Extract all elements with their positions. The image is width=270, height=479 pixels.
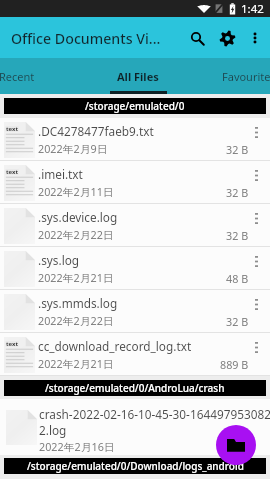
- staticText: .imei.txt: [38, 166, 83, 182]
- button[interactable]: All Files: [80, 58, 196, 94]
- button[interactable]: text: [0, 161, 270, 204]
- staticText: 889 B: [220, 357, 249, 372]
- button[interactable]: text: [0, 333, 270, 376]
- staticText: .sys.device.log: [38, 209, 118, 225]
- staticText: /storage/emulated/0/Download/logs_androi…: [27, 459, 244, 473]
- staticText: crash-2022-02-16-10-45-30-1644979530822.…: [39, 406, 270, 438]
- button[interactable]: /storage/emulated/0/Download/logs_androi…: [4, 458, 266, 474]
- staticText: Office Documents Vi...: [11, 29, 161, 48]
- button[interactable]: crash-2022-02-16-10-45-30-1644979530822.…: [0, 399, 270, 455]
- staticText: .DC4278477faeb9.txt: [38, 123, 154, 139]
- staticText: 2022年2月21日: [38, 270, 114, 285]
- button[interactable]: text: [0, 118, 270, 161]
- staticText: 2022年2月16日: [39, 439, 115, 454]
- staticText: 32 B: [226, 228, 249, 243]
- button[interactable]: More options: [242, 25, 268, 51]
- staticText: 32 B: [226, 142, 249, 157]
- staticText: /storage/emulated/0/AndroLua/crash: [45, 381, 225, 395]
- button[interactable]: Recent: [0, 58, 75, 94]
- staticText: All Files: [117, 69, 159, 84]
- button[interactable]: .sys.mmds.log: [0, 290, 270, 333]
- staticText: 2022年2月9日: [38, 141, 108, 156]
- staticText: 32 B: [226, 185, 249, 200]
- staticText: .sys.log: [38, 252, 80, 268]
- staticText: /storage/emulated/0: [85, 99, 185, 113]
- button[interactable]: Settings: [212, 23, 242, 53]
- button[interactable]: .sys.log: [0, 247, 270, 290]
- staticText: 2022年2月22日: [38, 313, 114, 328]
- button[interactable]: /storage/emulated/0: [4, 98, 266, 114]
- staticText: 2022年2月11日: [38, 184, 114, 199]
- staticText: text: [6, 340, 19, 348]
- staticText: Favourites: [222, 69, 270, 84]
- staticText: Recent: [0, 69, 35, 84]
- staticText: 2022年2月22日: [38, 227, 114, 242]
- button[interactable]: /storage/emulated/0/AndroLua/crash: [4, 380, 266, 396]
- staticText: .sys.mmds.log: [38, 295, 118, 311]
- staticText: 2022年2月21日: [38, 356, 114, 371]
- button[interactable]: Favourites: [191, 58, 270, 94]
- staticText: text: [6, 125, 19, 133]
- staticText: 1:42: [241, 1, 264, 17]
- button[interactable]: .sys.device.log: [0, 204, 270, 247]
- staticText: 48 B: [226, 271, 249, 286]
- staticText: text: [6, 168, 19, 176]
- button[interactable]: Search: [182, 23, 212, 53]
- staticText: 32 B: [226, 314, 249, 329]
- staticText: cc_download_record_log.txt: [38, 338, 192, 354]
- button[interactable]: New folder: [216, 425, 256, 465]
